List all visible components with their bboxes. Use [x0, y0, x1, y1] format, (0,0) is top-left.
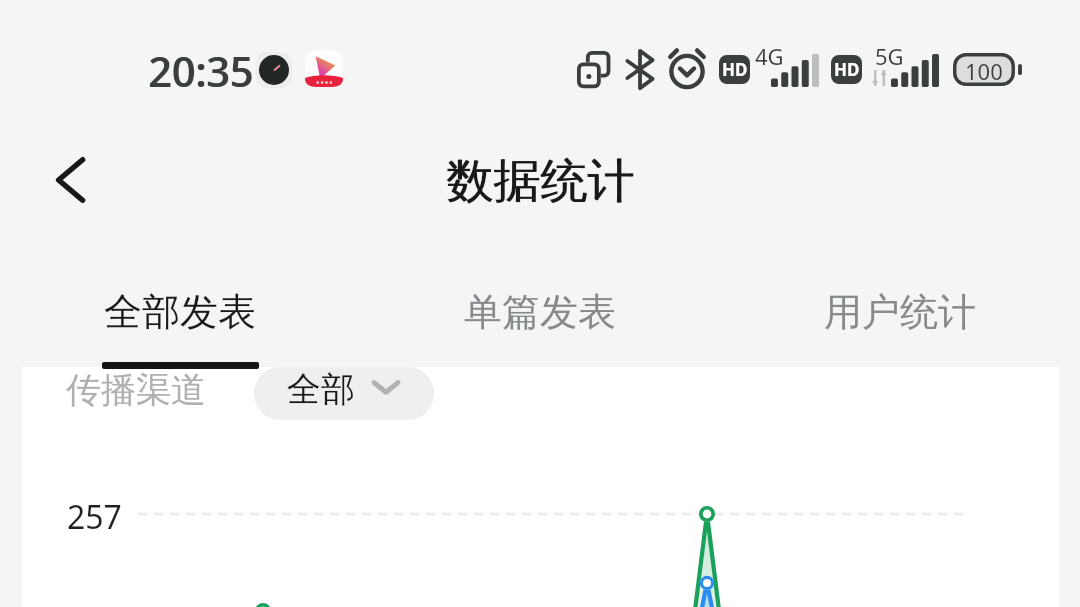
staticText: 数据统计	[447, 152, 635, 211]
staticText: 20:35	[149, 43, 254, 99]
staticText: HD	[834, 58, 860, 81]
staticText: 数据统计	[446, 152, 634, 211]
button[interactable]: 单篇发表	[360, 270, 720, 367]
button[interactable]: 全部发表	[0, 270, 360, 367]
staticText: 5G	[875, 41, 904, 71]
button[interactable]: 全部	[254, 367, 434, 420]
button[interactable]: 用户统计	[720, 270, 1080, 367]
staticText: 257	[67, 495, 122, 539]
staticText: 传播渠道	[66, 368, 206, 412]
staticText: HD	[722, 58, 748, 81]
staticText: 用户统计	[824, 288, 976, 336]
staticText: 4G	[755, 41, 784, 71]
staticText: 100	[965, 56, 1003, 86]
button[interactable]: Back	[30, 142, 110, 220]
staticText: 20:35	[148, 43, 253, 99]
staticText: 全部发表	[104, 288, 256, 336]
staticText: 全部	[287, 368, 355, 411]
staticText: 单篇发表	[464, 288, 616, 336]
